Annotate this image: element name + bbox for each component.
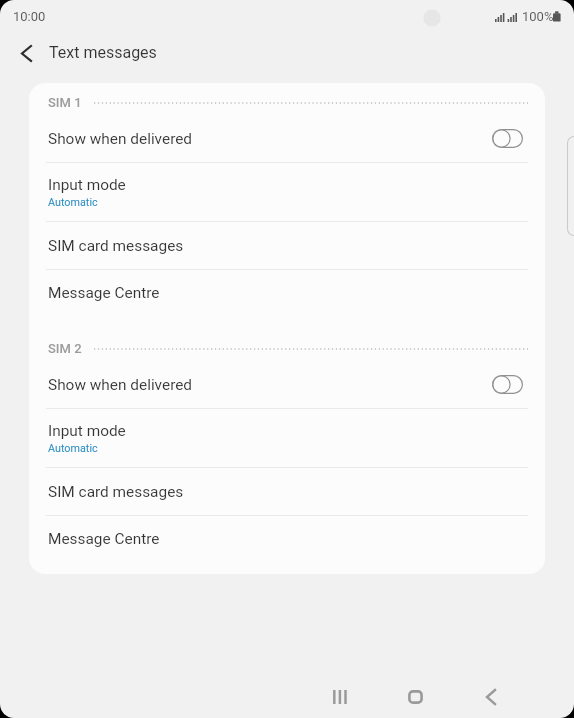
staticText: Input mode [48, 176, 126, 194]
button[interactable]: Input mode [29, 409, 545, 467]
staticText: 100% [522, 9, 554, 24]
button[interactable]: Recent apps [309, 672, 371, 718]
staticText: SIM 2 [48, 341, 82, 356]
staticText: SIM card messages [48, 237, 184, 255]
staticText: Automatic [48, 196, 98, 209]
button[interactable]: Show when delivered [29, 115, 545, 162]
staticText: Automatic [48, 442, 98, 455]
button[interactable]: Back [460, 672, 522, 718]
button[interactable]: Navigate up [8, 35, 44, 71]
button[interactable]: SIM card messages [29, 222, 545, 269]
button[interactable]: Message Centre [29, 270, 545, 316]
staticText: Message Centre [48, 530, 160, 548]
staticText: 10:00 [13, 9, 46, 24]
staticText: Input mode [48, 422, 126, 440]
staticText: Text messages [49, 43, 157, 62]
button[interactable]: Message Centre [29, 516, 545, 562]
button[interactable]: Show when delivered [29, 361, 545, 408]
staticText: Show when delivered [48, 130, 193, 148]
staticText: Show when delivered [48, 376, 193, 394]
button[interactable]: Input mode [29, 163, 545, 221]
staticText: SIM 1 [48, 95, 82, 110]
staticText: SIM card messages [48, 483, 184, 501]
staticText: Message Centre [48, 284, 160, 302]
button[interactable]: SIM card messages [29, 468, 545, 515]
button[interactable]: Home [384, 672, 446, 718]
